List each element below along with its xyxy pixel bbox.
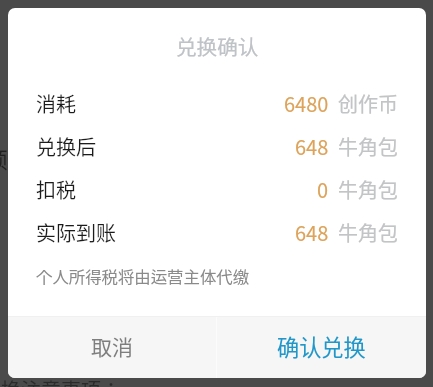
button[interactable]: 取消 xyxy=(8,317,216,378)
staticText: 烦 xyxy=(0,142,9,174)
staticText: 0 xyxy=(317,175,329,204)
button[interactable]: 确认兑换 xyxy=(217,317,426,378)
staticText: 换注意事项： xyxy=(1,375,121,387)
staticText: 取消 xyxy=(91,331,133,361)
staticText: 6480 xyxy=(284,89,329,118)
staticText: 消耗 xyxy=(36,89,76,118)
staticText: 648 xyxy=(295,218,329,247)
staticText: 个人所得税将由运营主体代缴 xyxy=(36,264,250,288)
staticText: 兑换后 xyxy=(36,132,96,161)
staticText: 牛角包 xyxy=(338,218,398,247)
staticText: 牛角包 xyxy=(338,175,398,204)
staticText: 确认兑换 xyxy=(277,330,366,362)
staticText: 扣税 xyxy=(36,175,76,204)
staticText: 牛角包 xyxy=(338,132,398,161)
staticText: 创作币 xyxy=(338,89,398,118)
staticText: 648 xyxy=(295,132,329,161)
staticText: 兑换确认 xyxy=(176,31,259,61)
staticText: 实际到账 xyxy=(36,218,116,247)
